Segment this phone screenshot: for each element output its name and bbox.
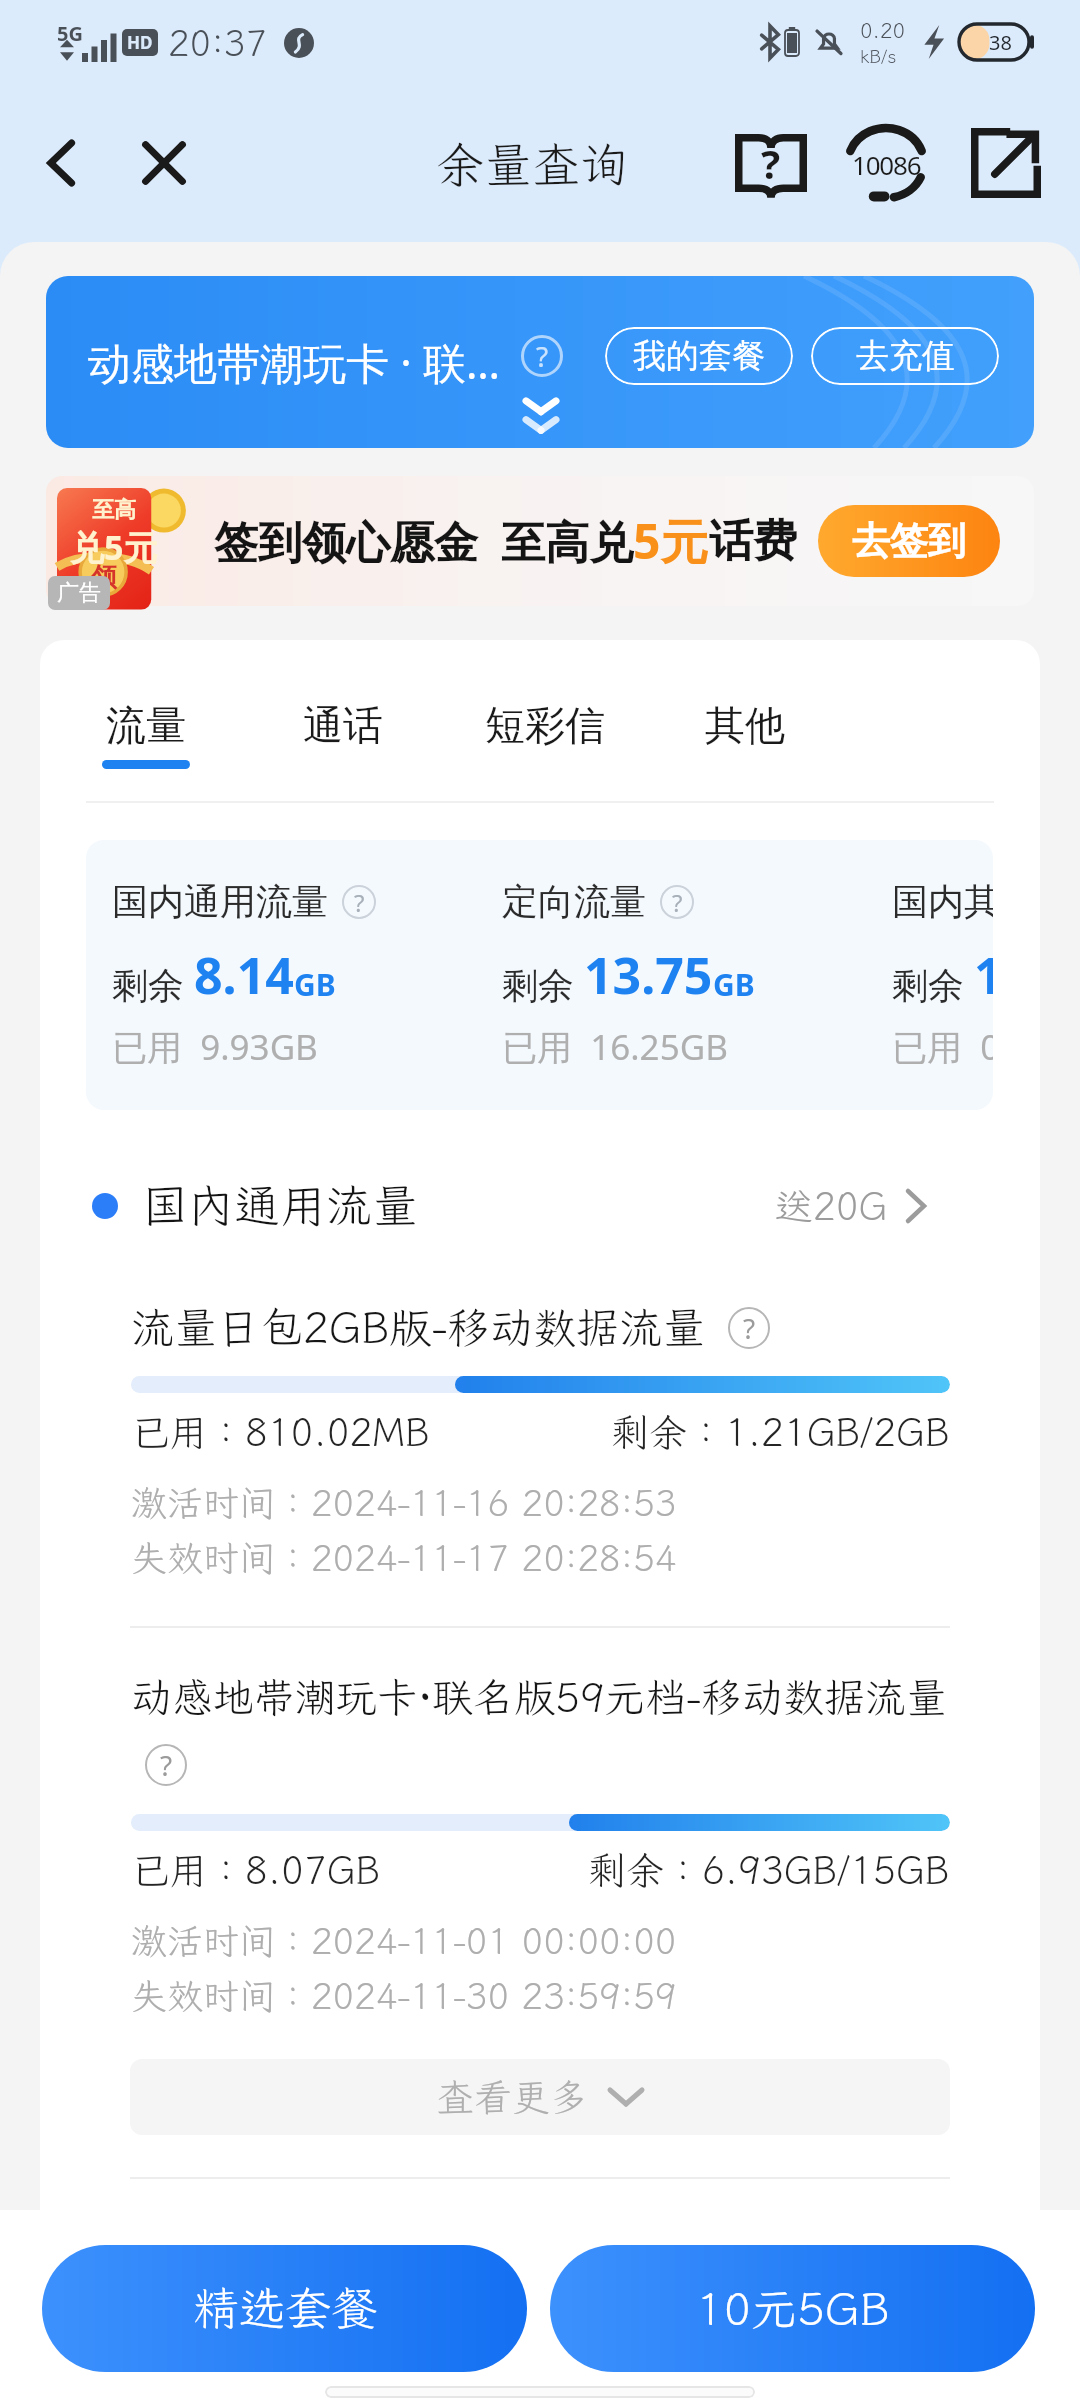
staticText: 激活时间：2024-11-16 20:28:53 xyxy=(131,1479,677,1526)
button[interactable]: Help xyxy=(729,121,813,205)
staticText: ? xyxy=(160,1746,173,1784)
staticText: 已用 9.93GB xyxy=(112,1023,318,1071)
button[interactable]: 查看更多 xyxy=(130,2059,950,2135)
staticText: 通话 xyxy=(303,700,383,750)
button[interactable]: 其他 xyxy=(705,700,785,760)
staticText: 去签到 xyxy=(852,517,966,565)
staticText: 动感地带潮玩卡·联名版59元档-移动数据流量 xyxy=(131,1670,947,1724)
staticText: 5元 xyxy=(633,508,709,574)
button[interactable]: 去充值 xyxy=(811,327,999,385)
staticText: 38 xyxy=(989,29,1012,56)
staticText: ? xyxy=(761,136,781,190)
staticText: 失效时间：2024-11-30 23:59:59 xyxy=(131,1972,677,2019)
staticText: 定向流量 xyxy=(502,879,646,924)
staticText: 剩余 xyxy=(502,960,584,1009)
staticText: 10元5GB xyxy=(696,2278,890,2339)
staticText: 1 xyxy=(974,941,993,1009)
staticText: 查看更多 xyxy=(436,2072,589,2122)
button[interactable]: Call 10086 xyxy=(842,119,930,207)
button[interactable]: 去签到 xyxy=(818,505,1000,577)
staticText: 流量日包2GB版-移动数据流量 xyxy=(131,1299,706,1356)
staticText: kB/s xyxy=(860,44,897,68)
staticText: 已用 0 xyxy=(892,1023,993,1071)
staticText: 剩余：1.21GB/2GB xyxy=(611,1407,950,1457)
staticText: HD xyxy=(127,31,153,54)
staticText: 兑5元 xyxy=(70,524,158,570)
button[interactable]: Close xyxy=(124,123,204,203)
staticText: 话费 xyxy=(709,514,797,569)
staticText: 去充值 xyxy=(856,335,955,377)
staticText: GB xyxy=(713,964,755,1005)
button[interactable]: 精选套餐 xyxy=(42,2245,527,2372)
staticText: 国内其他 xyxy=(892,879,993,924)
staticText: 余量查询 xyxy=(436,132,629,195)
staticText: 领 xyxy=(91,561,117,594)
staticText: 激活时间：2024-11-01 00:00:00 xyxy=(131,1917,677,1964)
staticText: 10086 xyxy=(852,147,921,182)
staticText: 广告 xyxy=(57,579,101,607)
staticText: ? xyxy=(743,1309,756,1347)
button[interactable]: 签到领心愿金 至高兑 xyxy=(46,476,1034,606)
staticText: ? xyxy=(536,337,549,375)
button[interactable]: 流量 xyxy=(102,700,190,769)
staticText: 流量 xyxy=(106,700,186,750)
button[interactable]: 动感地带潮玩卡 · 联… xyxy=(46,276,1034,448)
staticText: 5G xyxy=(57,20,83,47)
staticText: 失效时间：2024-11-17 20:28:54 xyxy=(131,1534,677,1581)
staticText: 0.20 xyxy=(860,16,906,44)
staticText: ? xyxy=(354,886,365,919)
staticText: 8.14 xyxy=(194,941,294,1009)
staticText: 动感地带潮玩卡 · 联… xyxy=(88,333,500,392)
staticText: 国内通用流量 xyxy=(112,879,328,924)
staticText: ? xyxy=(672,886,683,919)
staticText: 20:37 xyxy=(168,19,268,66)
staticText: 已用 16.25GB xyxy=(502,1023,728,1071)
button[interactable]: 10元5GB xyxy=(550,2245,1035,2372)
staticText: 已用：810.02MB xyxy=(131,1407,430,1457)
staticText: 13.75 xyxy=(584,941,713,1009)
button[interactable]: Share xyxy=(964,121,1048,205)
button[interactable]: 通话 xyxy=(303,700,383,760)
staticText: 送20G xyxy=(775,1181,888,1231)
staticText: 已用：8.07GB xyxy=(131,1845,380,1895)
staticText: 其他 xyxy=(705,700,785,750)
staticText: 剩余 xyxy=(112,960,194,1009)
staticText: GB xyxy=(294,964,336,1005)
button[interactable]: 我的套餐 xyxy=(605,327,793,385)
staticText: 签到领心愿金 至高兑 xyxy=(214,511,633,571)
button[interactable]: Back xyxy=(22,123,102,203)
button[interactable]: 国内通用流量 xyxy=(92,1175,926,1236)
button[interactable]: 短彩信 xyxy=(485,700,605,760)
staticText: 精选套餐 xyxy=(193,2278,377,2339)
staticText: 至高 xyxy=(92,496,136,524)
staticText: 剩余：6.93GB/15GB xyxy=(588,1845,950,1895)
staticText: 我的套餐 xyxy=(633,335,765,377)
staticText: 国内通用流量 xyxy=(142,1175,418,1236)
staticText: 短彩信 xyxy=(485,700,605,750)
staticText: 剩余 xyxy=(892,960,974,1009)
